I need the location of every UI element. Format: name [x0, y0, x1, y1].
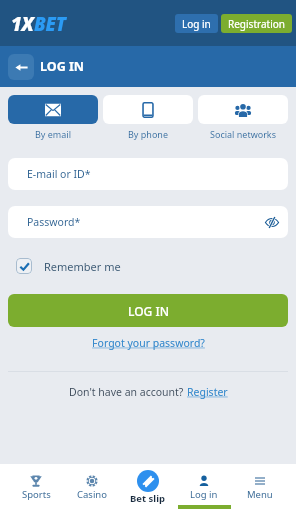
- button[interactable]: Social networks: [198, 95, 288, 140]
- button[interactable]: E-mail or ID*: [8, 158, 288, 190]
- staticText: Registration: [228, 17, 285, 31]
- staticText: Don't have an account?: [69, 385, 187, 399]
- staticText: Remember me: [44, 259, 121, 274]
- button[interactable]: Registration: [221, 14, 292, 33]
- staticText: Bet slip: [130, 492, 166, 505]
- staticText: E-mail or ID*: [27, 167, 91, 181]
- staticText: Log in: [190, 488, 218, 501]
- button[interactable]: Password*: [8, 206, 288, 238]
- button[interactable]: Register: [187, 385, 228, 399]
- staticText: By email: [35, 128, 71, 140]
- button[interactable]: By email: [8, 95, 98, 140]
- button[interactable]: Sports: [8, 464, 64, 512]
- staticText: LOG IN: [128, 303, 169, 319]
- button[interactable]: 1xBet: [11, 11, 66, 36]
- staticText: Casino: [77, 488, 107, 501]
- staticText: LOG IN: [40, 58, 84, 75]
- button[interactable]: By phone: [103, 95, 193, 140]
- staticText: Social networks: [210, 128, 276, 140]
- button[interactable]: Remember me: [8, 258, 121, 274]
- staticText: By phone: [128, 128, 168, 140]
- staticText: Password*: [27, 215, 81, 229]
- staticText: Log in: [182, 17, 211, 31]
- button[interactable]: Back: [8, 54, 34, 80]
- button[interactable]: LOG IN: [8, 294, 288, 327]
- button[interactable]: Casino: [64, 464, 120, 512]
- button[interactable]: Bet slip: [120, 464, 176, 512]
- staticText: 1X: [11, 11, 34, 36]
- staticText: BET: [34, 11, 66, 36]
- staticText: Menu: [247, 488, 273, 501]
- staticText: Sports: [22, 488, 51, 501]
- button[interactable]: Log in: [175, 14, 218, 33]
- button[interactable]: Log in: [176, 464, 232, 512]
- button[interactable]: Menu: [232, 464, 288, 512]
- button[interactable]: Show password: [262, 212, 282, 232]
- button[interactable]: Forgot your password?: [92, 336, 205, 350]
